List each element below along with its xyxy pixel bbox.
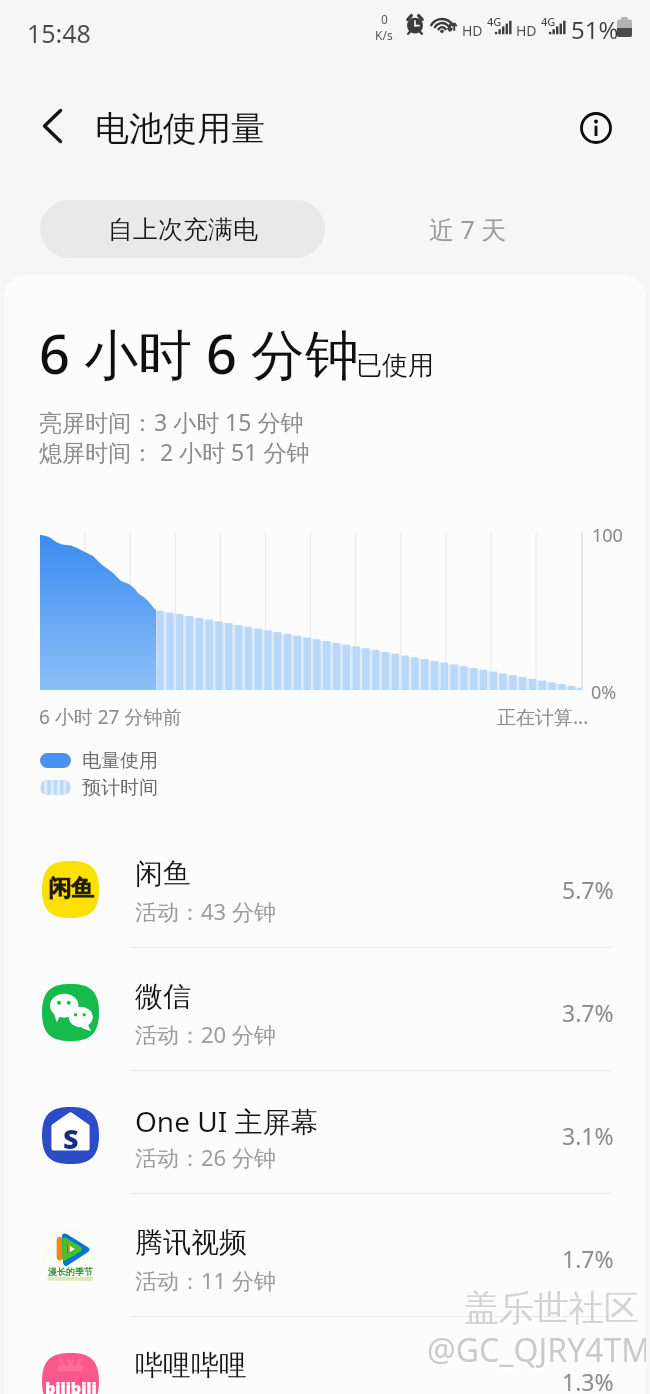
staticText: 自上次充满电	[108, 214, 258, 245]
staticText: 已使用	[356, 349, 434, 382]
staticText: 盖乐世社区	[466, 1288, 641, 1332]
button[interactable]: Back	[28, 102, 76, 150]
staticText: 电量使用	[82, 749, 158, 773]
staticText: K/s	[375, 27, 393, 43]
staticText: 0%	[591, 680, 617, 705]
button[interactable]: S	[4, 1071, 646, 1193]
staticText: 近 7 天	[429, 212, 507, 246]
staticText: One UI 主屏幕	[135, 1102, 319, 1140]
staticText: 活动：43 分钟	[135, 896, 276, 926]
button[interactable]: 闲鱼	[4, 825, 646, 947]
staticText: 熄屏时间： 2 小时 51 分钟	[39, 436, 310, 467]
staticText: 6 小时 27 分钟前	[39, 704, 182, 730]
staticText: 活动：20 分钟	[135, 1019, 276, 1049]
staticText: 3.7%	[562, 997, 614, 1028]
staticText: 正在计算...	[497, 704, 589, 730]
staticText: @GC_QJRY4TM	[427, 1328, 646, 1372]
staticText: 4G	[541, 14, 556, 29]
staticText: 微信	[135, 979, 191, 1014]
button[interactable]: 微信	[4, 948, 646, 1070]
button[interactable]: bilibili	[4, 1317, 646, 1394]
staticText: bilibili	[45, 1377, 97, 1394]
staticText: 1.7%	[562, 1243, 614, 1274]
staticText: 0	[381, 11, 388, 27]
staticText: 闲鱼	[48, 874, 94, 903]
button[interactable]: 自上次充满电	[40, 200, 325, 258]
staticText: 4G	[487, 14, 502, 29]
staticText: 51%	[571, 13, 619, 46]
staticText: 腾讯视频	[135, 1225, 247, 1260]
staticText: 亮屏时间：3 小时 15 分钟	[39, 406, 304, 437]
staticText: 100	[592, 523, 623, 548]
staticText: @GC_QJRY4TM	[429, 1330, 646, 1374]
staticText: 5.7%	[562, 874, 614, 905]
button[interactable]: Information	[572, 104, 620, 152]
staticText: 活动：26 分钟	[135, 1142, 276, 1172]
staticText: HD	[516, 21, 537, 40]
staticText: 盖乐世社区	[464, 1286, 639, 1330]
staticText: S	[63, 1120, 79, 1157]
staticText: 活动：11 分钟	[135, 1265, 276, 1295]
staticText: 6 小时 6 分钟	[39, 316, 359, 390]
staticText: HD	[462, 21, 483, 40]
staticText: 1.3%	[562, 1366, 614, 1394]
staticText: 哔哩哔哩	[135, 1348, 247, 1383]
staticText: 电池使用量	[95, 107, 265, 150]
staticText: 预计时间	[82, 776, 158, 800]
button[interactable]: 漫长的季节	[4, 1194, 646, 1316]
staticText: 漫长的季节	[48, 1266, 93, 1277]
staticText: 15:48	[27, 16, 91, 50]
button[interactable]: 近 7 天	[360, 200, 575, 258]
staticText: 闲鱼	[135, 856, 191, 891]
staticText: 3.1%	[562, 1120, 614, 1151]
